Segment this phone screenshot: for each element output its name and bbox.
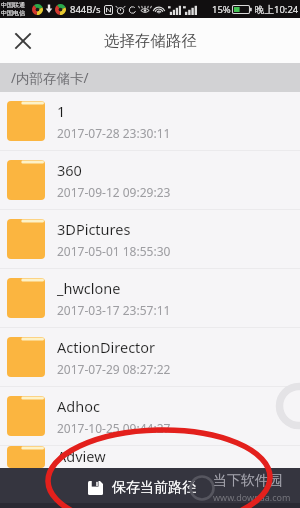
button[interactable]: 360: [0, 151, 300, 210]
staticText: 当下软件园: [213, 472, 283, 490]
button[interactable]: ActionDirector: [0, 328, 300, 387]
button[interactable]: Adview: [0, 446, 300, 468]
staticText: 保存当前路径: [112, 479, 196, 497]
staticText: Adhoc: [57, 396, 100, 416]
staticText: 15%: [212, 3, 231, 16]
staticText: 2017-03-17 23:57:11: [57, 302, 171, 318]
button[interactable]: 保存当前路径: [88, 479, 196, 497]
staticText: 2017-07-29 08:27:22: [57, 361, 171, 377]
button[interactable]: 1: [0, 92, 300, 151]
staticText: /内部存储卡/: [11, 69, 89, 87]
staticText: _hwclone: [57, 278, 121, 298]
button[interactable]: Adhoc: [0, 387, 300, 446]
staticText: ActionDirector: [57, 337, 156, 357]
staticText: 2017-07-28 23:30:11: [57, 125, 171, 141]
staticText: 晚上10:24: [255, 3, 299, 16]
staticText: 2017-09-12 09:29:23: [57, 184, 171, 200]
staticText: 2017-05-01 18:55:30: [57, 243, 171, 259]
button[interactable]: 3DPictures: [0, 210, 300, 269]
staticText: 844B/s: [70, 3, 101, 16]
staticText: Adview: [57, 446, 106, 466]
staticText: 360: [57, 160, 82, 180]
staticText: www.downaa.com: [213, 491, 291, 503]
button[interactable]: _hwclone: [0, 269, 300, 328]
button[interactable]: Close: [0, 18, 45, 63]
staticText: 中国联通: [1, 1, 25, 9]
staticText: 1: [57, 101, 66, 121]
staticText: 中国电信: [1, 9, 25, 17]
staticText: 3DPictures: [57, 219, 131, 239]
staticText: 2017-10-25 09:44:27: [57, 420, 171, 436]
staticText: 选择存储路径: [104, 31, 197, 51]
